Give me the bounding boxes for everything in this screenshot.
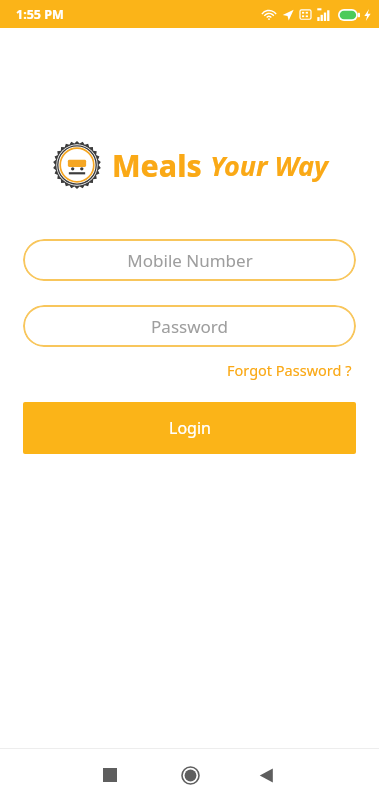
button[interactable]: Home — [168, 753, 212, 797]
staticText: Forgot Password ? — [227, 360, 352, 380]
button[interactable]: Password — [23, 305, 356, 347]
staticText: Mobile Number — [127, 249, 253, 272]
staticText: Login — [169, 417, 211, 439]
staticText: Meals — [112, 145, 202, 186]
staticText: 1:55 PM — [16, 6, 64, 23]
button[interactable]: Forgot Password ? — [223, 358, 356, 382]
staticText: Password — [151, 315, 228, 338]
staticText: Your Way — [210, 147, 328, 184]
button[interactable]: Back — [244, 753, 288, 797]
button[interactable]: Login — [23, 402, 356, 454]
button[interactable]: Mobile Number — [23, 239, 356, 281]
button[interactable]: Recent apps — [88, 753, 132, 797]
